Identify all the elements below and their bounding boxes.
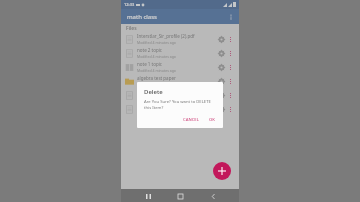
button[interactable]: chapter notes [121,88,239,102]
button[interactable]: Item menu [226,63,235,72]
button[interactable]: CANCEL [180,115,202,125]
button[interactable]: algebra test paper [121,74,239,88]
staticText: OK [209,117,215,123]
staticText: chapter notes [137,89,167,95]
button[interactable]: Interstlar_Sir_profile (2).pdf [121,32,239,46]
button[interactable]: Back [207,190,219,202]
staticText: Modified 4 minutes ago [137,40,176,45]
button[interactable]: Home [174,190,186,202]
button[interactable]: More options [225,11,237,23]
button[interactable]: Download [216,48,226,58]
button[interactable]: OK [206,115,218,125]
staticText: CANCEL [183,117,199,123]
staticText: 12:33 [124,2,135,7]
button[interactable]: Item menu [226,77,235,86]
button[interactable]: note 1 topic [121,60,239,74]
staticText: Are You Sure? You want to DELETE this It… [144,99,218,111]
button[interactable]: Download [216,104,226,114]
staticText: algebra test paper [137,75,176,81]
button[interactable]: Download [216,90,226,100]
button[interactable]: Download [216,62,226,72]
button[interactable]: homework set [121,102,239,116]
button[interactable]: Recents [142,190,154,202]
button[interactable]: Download [216,34,226,44]
staticText: math class [127,13,157,21]
button[interactable]: Item menu [226,105,235,114]
staticText: Delete [144,88,163,96]
button[interactable]: Item menu [226,49,235,58]
staticText: homework set [137,103,168,109]
staticText: Interstlar_Sir_profile (2).pdf [137,33,195,39]
staticText: Modified 4 minutes ago [137,68,176,73]
staticText: note 1 topic [137,61,163,67]
button[interactable]: Item menu [226,91,235,100]
button[interactable]: note 2 topic [121,46,239,60]
button[interactable]: Download [216,76,226,86]
staticText: Modified 4 minutes ago [137,54,176,59]
staticText: Files [126,25,137,32]
staticText: note 2 topic [137,47,163,53]
button[interactable]: Item menu [226,35,235,44]
staticText: Modified 6 minutes ago [137,96,176,101]
button[interactable]: Add [213,162,231,180]
